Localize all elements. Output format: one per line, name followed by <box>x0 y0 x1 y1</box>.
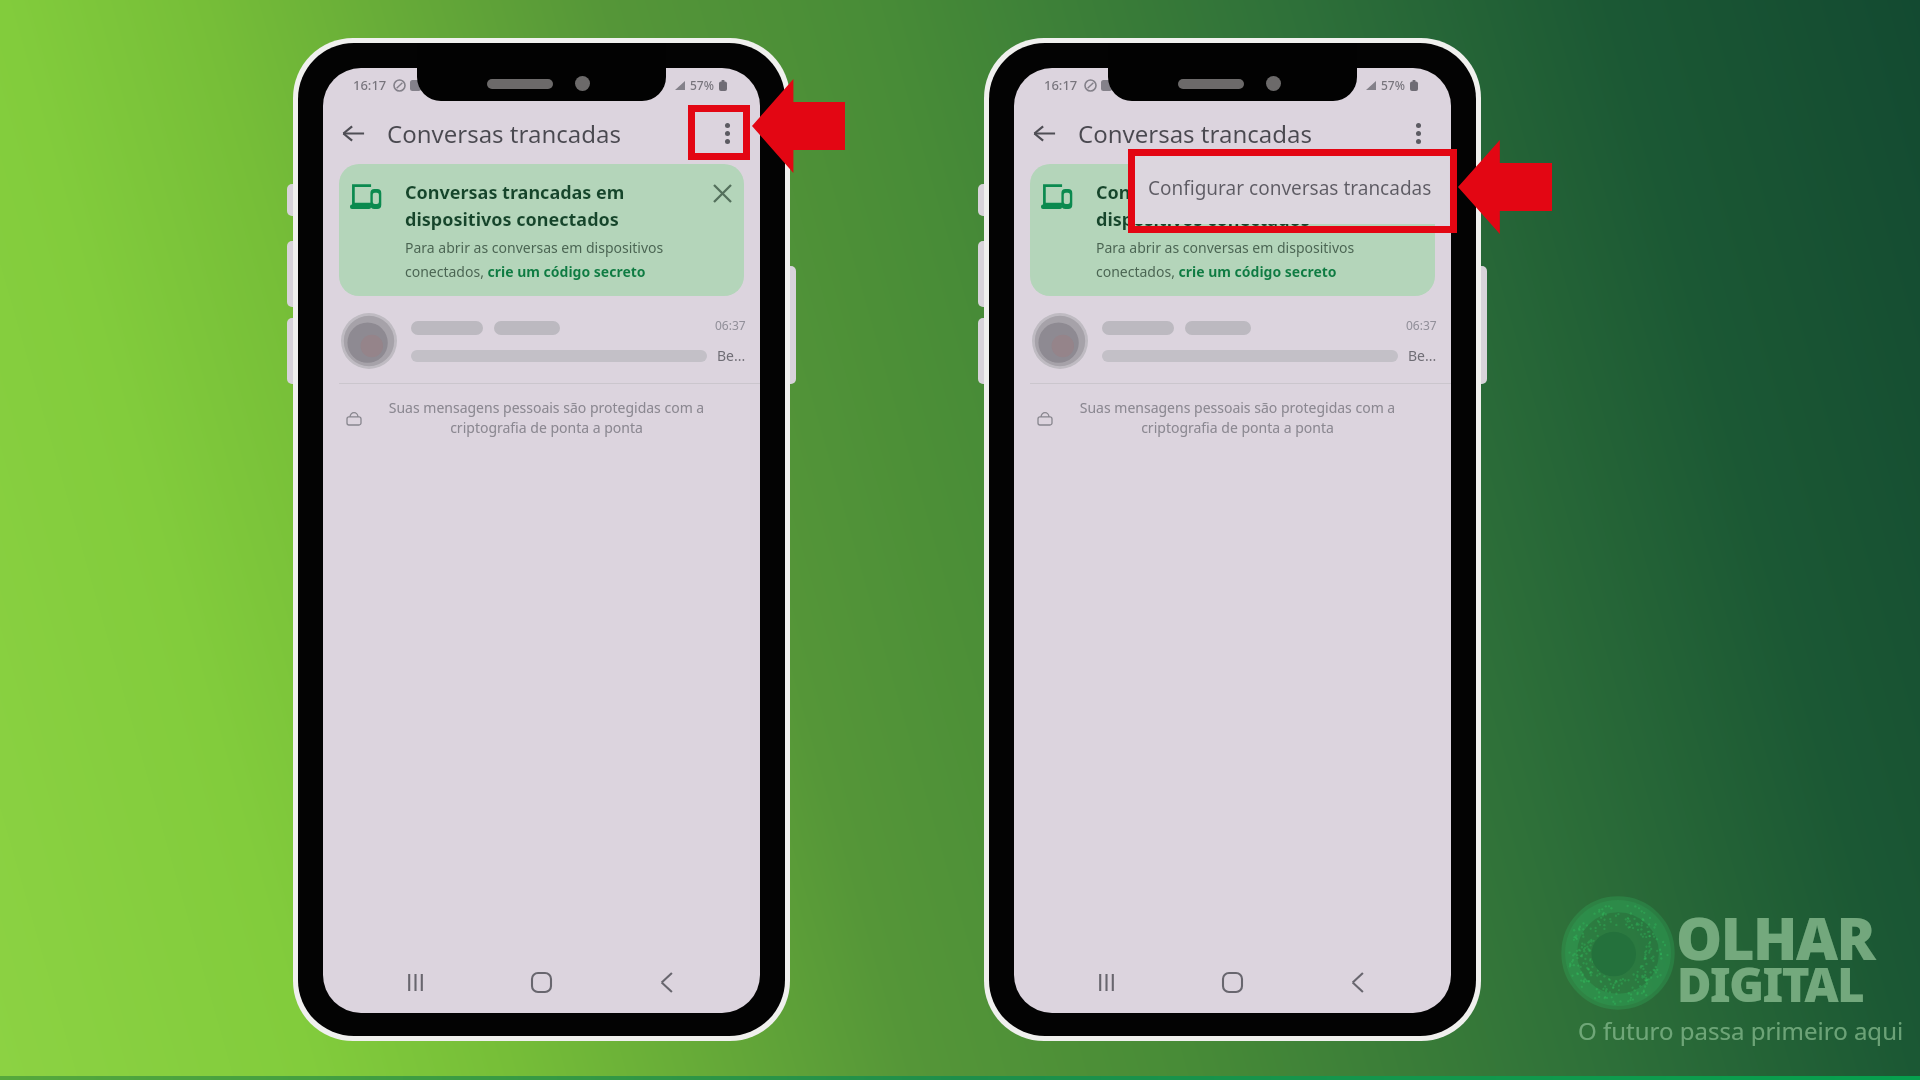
staticText: 06:37 <box>715 317 746 333</box>
staticText: Para abrir as conversas em dispositivos … <box>405 238 664 281</box>
button[interactable]: Recentes <box>1044 951 1169 1013</box>
staticText: 16:17 <box>1044 76 1078 94</box>
staticText: Conversas trancadas <box>1078 117 1312 150</box>
staticText: Suas mensagens pessoais são protegidas c… <box>1052 398 1423 438</box>
button[interactable]: Voltar <box>604 951 730 1013</box>
button[interactable]: Destaque do menu <box>688 105 750 160</box>
staticText: Conversas trancadas em dispositivos cone… <box>405 180 625 231</box>
staticText: 16:17 <box>353 76 387 94</box>
button[interactable]: 06:37 <box>1014 299 1451 383</box>
button[interactable]: Início <box>478 951 604 1013</box>
staticText: 06:37 <box>1406 317 1437 333</box>
staticText: Conversas trancadas <box>387 117 621 150</box>
button[interactable]: Mais opções <box>706 112 748 154</box>
button[interactable]: Conversas trancadas em dispositivos cone… <box>1030 164 1435 296</box>
staticText: DIGITAL <box>1677 952 1864 1016</box>
staticText: Be... <box>1408 346 1437 365</box>
button[interactable]: Conversas trancadas em dispositivos cone… <box>339 164 744 296</box>
button[interactable]: Fechar <box>1400 180 1426 206</box>
staticText: Configurar conversas trancadas <box>1148 175 1432 201</box>
staticText: O futuro passa primeiro aqui <box>1578 1014 1904 1047</box>
button[interactable]: Voltar <box>330 110 376 156</box>
staticText: Para abrir as conversas em dispositivos … <box>1096 238 1355 281</box>
button[interactable]: Início <box>1169 951 1295 1013</box>
staticText: 57% <box>690 77 714 93</box>
button[interactable]: Fechar <box>709 180 735 206</box>
staticText: 57% <box>1381 77 1405 93</box>
button[interactable]: Recentes <box>353 951 478 1013</box>
button[interactable]: Voltar <box>1295 951 1421 1013</box>
button[interactable]: Configurar conversas trancadas <box>1129 151 1449 224</box>
button[interactable]: Mais opções <box>1397 112 1439 154</box>
staticText: Be... <box>717 346 746 365</box>
button[interactable]: 06:37 <box>323 299 760 383</box>
staticText: Conversas trancadas em dispositivos cone… <box>1096 180 1316 231</box>
button[interactable]: Voltar <box>1021 110 1067 156</box>
button[interactable]: Destaque da opção <box>1128 149 1457 233</box>
staticText: Suas mensagens pessoais são protegidas c… <box>361 398 732 438</box>
staticText: OLHAR <box>1676 898 1875 977</box>
